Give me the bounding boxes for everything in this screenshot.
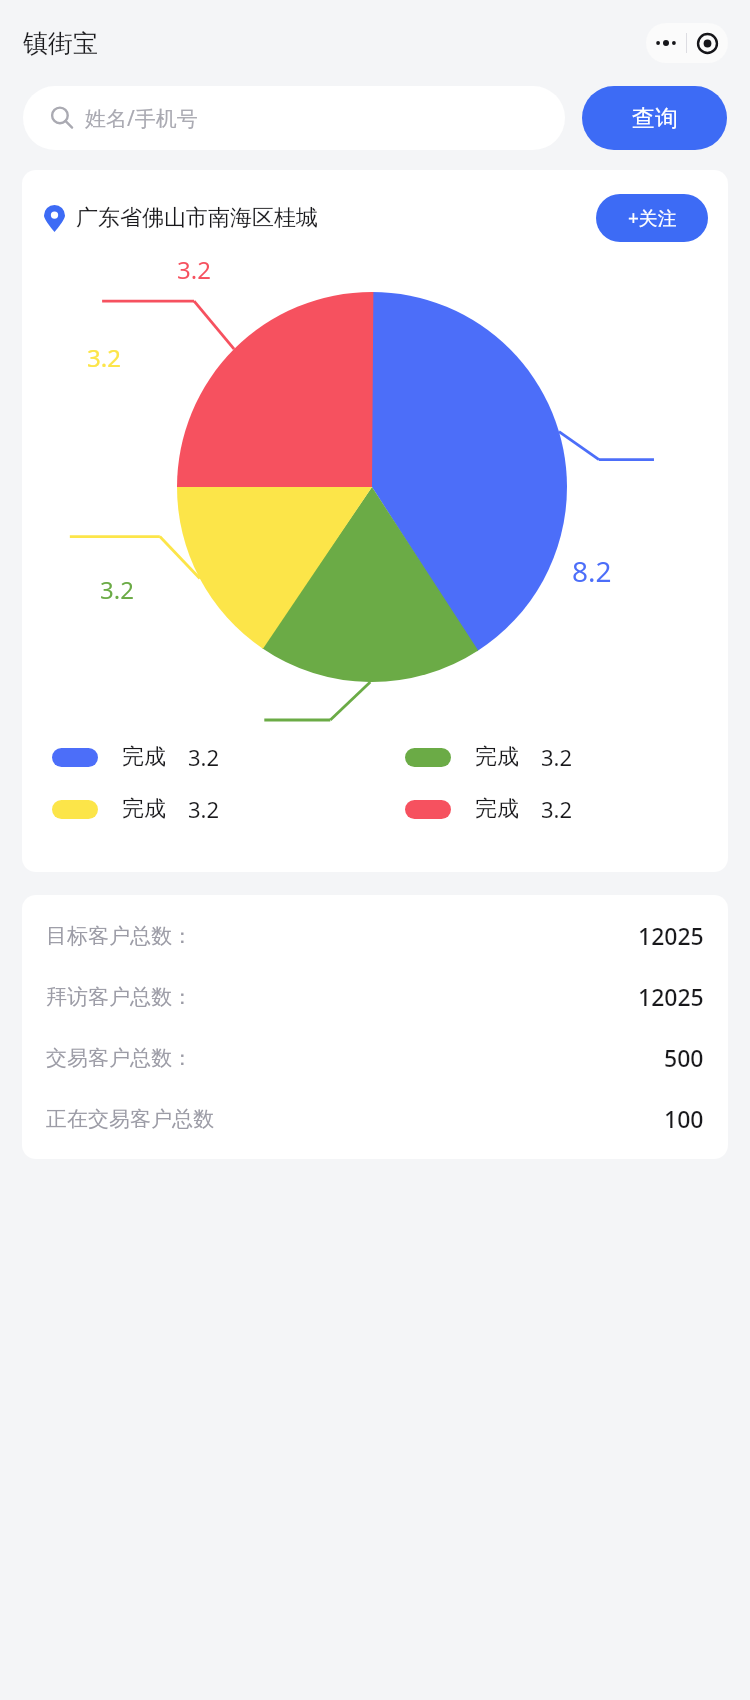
staticText: 3.2 [177,253,211,286]
button[interactable]: 交易客户总数： [46,1027,704,1088]
button[interactable]: 完成 [22,742,375,772]
staticText: 100 [664,1103,704,1134]
button[interactable]: 查询 [582,86,727,150]
staticText: 广东省佛山市南海区桂城 [76,204,318,232]
staticText: 8.2 [572,552,612,590]
button[interactable]: 正在交易客户总数 [46,1088,704,1149]
button[interactable]: 目标客户总数： [46,905,704,966]
button[interactable]: 拜访客户总数： [46,966,704,1027]
staticText: 拜访客户总数： [46,984,193,1010]
button[interactable]: 完成 [22,794,375,824]
staticText: 3.2 [541,794,573,824]
staticText: 姓名/手机号 [85,104,198,133]
button[interactable]: Close mini program [687,23,728,63]
staticText: 正在交易客户总数 [46,1106,214,1132]
staticText: 500 [664,1042,704,1073]
staticText: 3.2 [188,794,220,824]
button[interactable]: More options [646,23,686,63]
staticText: 交易客户总数： [46,1045,193,1071]
staticText: 3.2 [100,573,134,606]
button[interactable]: 姓名/手机号 [23,86,565,150]
button[interactable]: 完成 [375,794,728,824]
staticText: +关注 [628,205,677,231]
staticText: 查询 [632,104,678,133]
staticText: 12025 [638,981,704,1012]
staticText: 3.2 [87,341,121,374]
button[interactable]: +关注 [596,194,708,242]
staticText: 3.2 [188,742,220,772]
staticText: 12025 [638,920,704,951]
staticText: 完成 [122,743,166,771]
staticText: 完成 [475,743,519,771]
staticText: 3.2 [541,742,573,772]
staticText: 完成 [122,795,166,823]
staticText: 镇街宝 [23,28,98,59]
staticText: 完成 [475,795,519,823]
staticText: 目标客户总数： [46,923,193,949]
button[interactable]: 完成 [375,742,728,772]
